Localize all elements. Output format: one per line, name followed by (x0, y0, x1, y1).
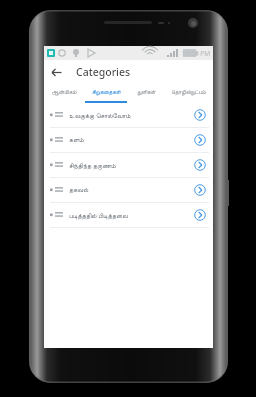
button[interactable]: களம் (44, 128, 213, 153)
button[interactable]: உலகுக்கு சொல்வோம் (44, 103, 213, 128)
button[interactable]: Back (44, 60, 68, 84)
staticText: உலகுக்கு சொல்வோம் (69, 111, 189, 120)
button[interactable]: தொழில்நுட்பம் (164, 84, 213, 101)
button[interactable]: துளிகள் (128, 84, 164, 101)
staticText: 10:59 PM (182, 49, 211, 58)
button[interactable]: தகவல் (44, 178, 213, 203)
button[interactable]: ஆன்மிகம் (44, 84, 84, 101)
staticText: சிந்திந்த தருணம் (69, 161, 189, 170)
button[interactable]: படித்ததில் பிடித்தவை (44, 203, 213, 228)
staticText: Categories (76, 65, 131, 79)
staticText: ஆன்மிகம் (51, 90, 77, 96)
button[interactable]: சிந்திந்த தருணம் (44, 153, 213, 178)
staticText: துளிகள் (137, 90, 156, 96)
staticText: தொழில்நுட்பம் (171, 90, 206, 96)
staticText: படித்ததில் பிடித்தவை (69, 211, 189, 220)
button[interactable]: சிறுகதைகள் (84, 84, 128, 101)
staticText: களம் (69, 137, 189, 144)
staticText: தகவல் (69, 187, 189, 194)
staticText: சிறுகதைகள் (92, 90, 121, 96)
